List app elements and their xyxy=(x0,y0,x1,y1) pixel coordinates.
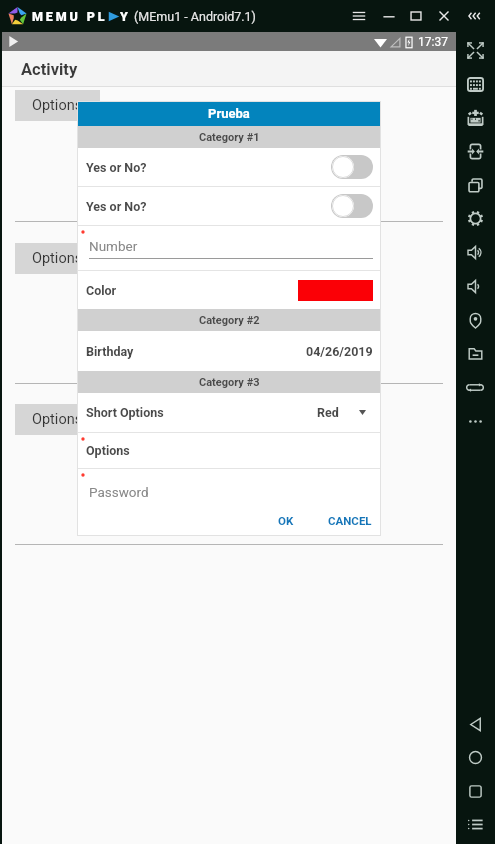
button[interactable]: Options xyxy=(15,404,100,435)
button[interactable]: Settings xyxy=(456,201,495,235)
button[interactable]: Menu xyxy=(345,3,373,29)
button[interactable]: Options xyxy=(77,433,381,468)
staticText: Y xyxy=(120,9,131,24)
staticText: 04/26/2019 xyxy=(306,344,373,359)
staticText: Options xyxy=(86,443,130,458)
staticText: Activity xyxy=(21,60,78,79)
button[interactable]: Recents xyxy=(456,774,495,808)
staticText: Color xyxy=(86,283,117,298)
staticText: Options xyxy=(32,411,83,428)
staticText: Category #2 xyxy=(199,314,260,327)
button[interactable]: Files xyxy=(456,336,495,370)
staticText: CANCEL xyxy=(328,514,372,527)
staticText: Birthday xyxy=(86,344,134,359)
staticText: Red xyxy=(317,405,339,420)
button[interactable]: Maximize xyxy=(402,3,430,29)
staticText: Short Options xyxy=(86,405,164,420)
button[interactable]: More xyxy=(456,404,495,438)
button[interactable]: Shared folder xyxy=(456,134,495,168)
staticText: Category #3 xyxy=(199,376,260,389)
button[interactable]: OK xyxy=(269,509,303,532)
staticText: Yes or No? xyxy=(86,199,147,214)
button[interactable]: Password xyxy=(77,469,381,514)
staticText: Yes or No? xyxy=(86,160,147,175)
button[interactable]: Yes or No? xyxy=(77,187,381,225)
staticText: Options xyxy=(32,250,83,267)
button[interactable]: Back xyxy=(456,707,495,741)
staticText: Number xyxy=(89,238,138,254)
button[interactable]: Home xyxy=(456,740,495,774)
button[interactable]: Options xyxy=(15,90,100,121)
staticText: MEMU PL xyxy=(32,9,108,24)
button[interactable]: Menu xyxy=(456,807,495,841)
button[interactable]: Short Options xyxy=(77,393,381,432)
staticText: OK xyxy=(278,514,294,527)
staticText: 17:37 xyxy=(418,35,448,49)
button[interactable]: Color xyxy=(77,271,381,309)
button[interactable]: Volume up xyxy=(456,235,495,269)
button[interactable]: Multi window xyxy=(456,168,495,202)
button[interactable]: Number xyxy=(77,226,381,270)
staticText: Options xyxy=(32,97,83,114)
staticText: Prueba xyxy=(208,106,250,121)
button[interactable]: Volume down xyxy=(456,269,495,303)
button[interactable]: Close xyxy=(430,3,458,29)
staticText: Password xyxy=(89,484,149,500)
button[interactable]: Yes or No? xyxy=(77,148,381,186)
staticText: (MEmu1 - Android7.1) xyxy=(134,9,256,24)
button[interactable]: CANCEL xyxy=(319,509,381,532)
button[interactable]: Birthday xyxy=(77,331,381,371)
button[interactable]: Location xyxy=(456,303,495,337)
button[interactable]: Keyboard xyxy=(456,67,495,101)
button[interactable]: Rotate xyxy=(456,370,495,404)
staticText: Category #1 xyxy=(199,131,260,144)
button[interactable]: Collapse xyxy=(461,3,489,29)
button[interactable]: Install APK xyxy=(456,100,495,134)
button[interactable]: Options xyxy=(15,243,100,274)
button[interactable]: Fullscreen xyxy=(456,33,495,67)
button[interactable]: Minimize xyxy=(375,3,403,29)
